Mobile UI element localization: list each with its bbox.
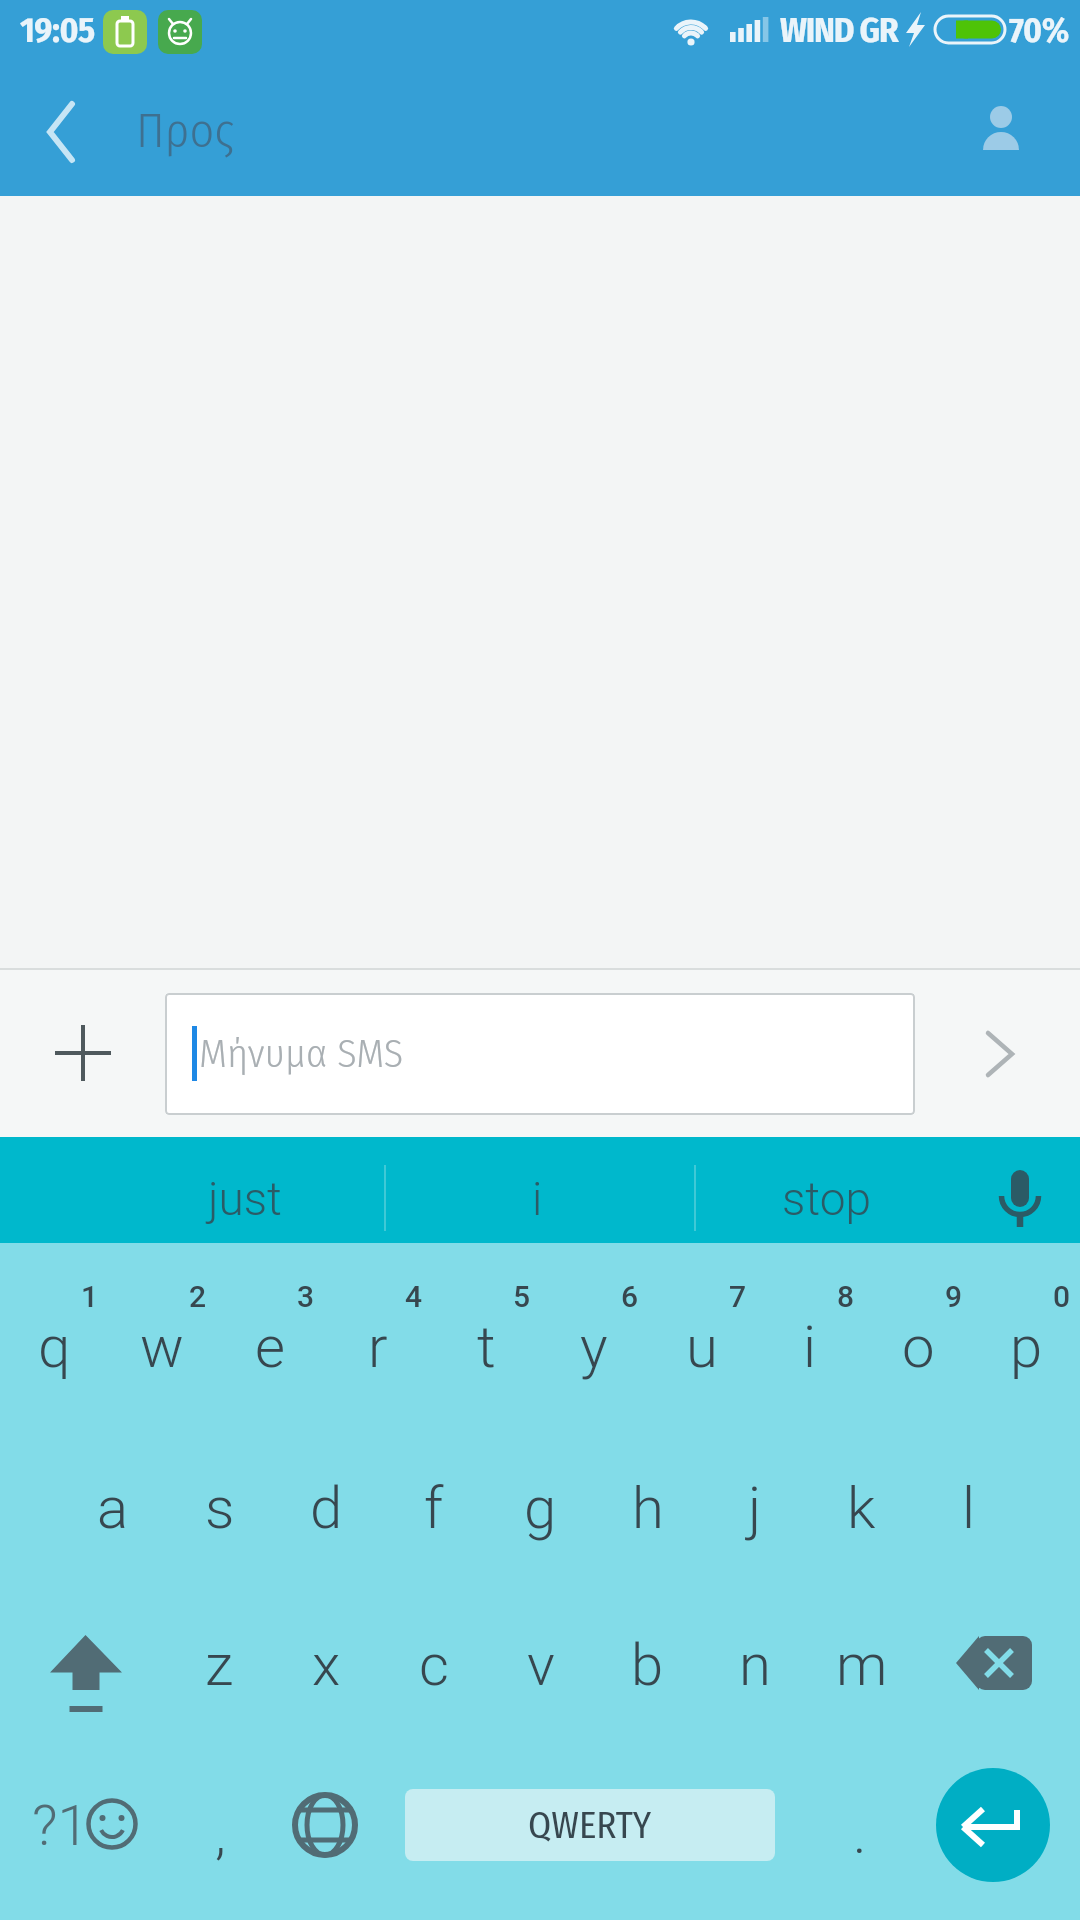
staticText: Μήνυμα SMS: [199, 1030, 404, 1078]
staticText: p: [1010, 1313, 1043, 1381]
staticText: 5: [513, 1279, 531, 1314]
staticText: 1: [81, 1279, 99, 1314]
button[interactable]: [958, 86, 1044, 172]
button[interactable]: j: [701, 1433, 808, 1583]
button[interactable]: t: [432, 1272, 540, 1422]
staticText: a: [97, 1474, 129, 1542]
staticText: stop: [782, 1172, 871, 1226]
button[interactable]: v: [487, 1590, 594, 1740]
button[interactable]: u: [648, 1272, 756, 1422]
staticText: 9: [945, 1279, 963, 1314]
button[interactable]: i: [756, 1272, 864, 1422]
staticText: w: [140, 1313, 184, 1381]
button[interactable]: b: [594, 1590, 701, 1740]
staticText: v: [527, 1631, 555, 1699]
button[interactable]: i: [412, 1143, 662, 1254]
button[interactable]: [936, 1768, 1050, 1882]
staticText: 6: [621, 1279, 639, 1314]
staticText: l: [962, 1474, 976, 1542]
staticText: k: [847, 1474, 876, 1542]
button[interactable]: [40, 1010, 126, 1096]
button[interactable]: k: [808, 1433, 915, 1583]
staticText: QWERTY: [528, 1803, 652, 1847]
staticText: ,: [215, 1801, 226, 1867]
staticText: 70%: [1009, 9, 1069, 51]
staticText: x: [312, 1631, 341, 1699]
button[interactable]: q: [0, 1272, 108, 1422]
staticText: i: [532, 1172, 543, 1226]
button[interactable]: Μήνυμα SMS: [165, 993, 915, 1115]
staticText: just: [208, 1172, 282, 1226]
button[interactable]: ,: [175, 1776, 265, 1892]
button[interactable]: x: [273, 1590, 380, 1740]
button[interactable]: g: [487, 1433, 594, 1583]
button[interactable]: stop: [701, 1143, 951, 1254]
button[interactable]: f: [380, 1433, 487, 1583]
staticText: s: [205, 1474, 235, 1542]
staticText: d: [310, 1474, 343, 1542]
staticText: 2: [189, 1279, 207, 1314]
staticText: i: [803, 1313, 817, 1381]
button[interactable]: w: [108, 1272, 216, 1422]
button[interactable]: o: [864, 1272, 972, 1422]
staticText: t: [477, 1313, 496, 1381]
button[interactable]: just: [120, 1143, 370, 1254]
staticText: b: [631, 1631, 664, 1699]
staticText: z: [205, 1631, 234, 1699]
staticText: 7: [729, 1279, 747, 1314]
button[interactable]: .: [815, 1776, 905, 1892]
staticText: 8: [837, 1279, 855, 1314]
staticText: j: [748, 1474, 762, 1542]
button[interactable]: [285, 1785, 365, 1865]
staticText: 0: [1053, 1279, 1071, 1314]
button[interactable]: d: [273, 1433, 380, 1583]
button[interactable]: n: [701, 1590, 808, 1740]
button[interactable]: [938, 1610, 1054, 1726]
staticText: WIND GR: [780, 9, 898, 51]
button[interactable]: l: [915, 1433, 1022, 1583]
staticText: c: [419, 1631, 449, 1699]
staticText: h: [632, 1474, 664, 1542]
staticText: y: [580, 1313, 608, 1381]
button[interactable]: [958, 1013, 1042, 1093]
button[interactable]: r: [324, 1272, 432, 1422]
staticText: n: [739, 1631, 771, 1699]
staticText: r: [368, 1313, 388, 1381]
button[interactable]: QWERTY: [405, 1789, 775, 1861]
button[interactable]: c: [380, 1590, 487, 1740]
button[interactable]: s: [166, 1433, 273, 1583]
staticText: g: [524, 1474, 557, 1542]
staticText: f: [424, 1474, 444, 1542]
button[interactable]: z: [166, 1590, 273, 1740]
staticText: 3: [297, 1279, 315, 1314]
button[interactable]: y: [540, 1272, 648, 1422]
staticText: m: [836, 1631, 888, 1699]
staticText: o: [902, 1313, 935, 1381]
button[interactable]: ?1: [16, 1770, 156, 1886]
button[interactable]: h: [594, 1433, 701, 1583]
button[interactable]: [980, 1155, 1060, 1241]
staticText: .: [853, 1801, 867, 1867]
button[interactable]: a: [59, 1433, 166, 1583]
staticText: ?1: [32, 1793, 89, 1859]
staticText: q: [38, 1313, 71, 1381]
staticText: e: [255, 1313, 285, 1381]
staticText: 19:05: [20, 9, 95, 51]
staticText: u: [686, 1313, 718, 1381]
staticText: 4: [405, 1279, 423, 1314]
button[interactable]: m: [808, 1590, 915, 1740]
button[interactable]: [32, 1610, 142, 1726]
button[interactable]: [24, 96, 96, 168]
button[interactable]: p: [972, 1272, 1080, 1422]
staticText: Προς: [136, 102, 235, 160]
button[interactable]: e: [216, 1272, 324, 1422]
